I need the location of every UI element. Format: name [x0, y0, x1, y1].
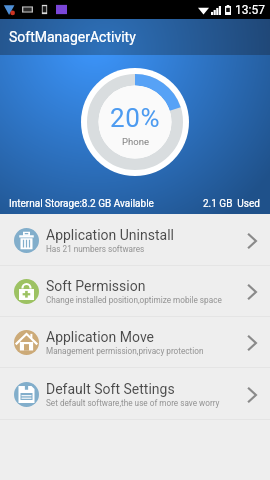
- button[interactable]: Application Uninstall: [0, 215, 270, 266]
- staticText: Management permission,privacy protection: [46, 346, 204, 356]
- staticText: Phone: [122, 136, 149, 147]
- staticText: Internal Storage:8.2 GB Available: [9, 198, 154, 210]
- staticText: 2.1 GB Used: [203, 198, 260, 210]
- other: Open Soft Permission: [245, 281, 259, 303]
- staticText: 13:57: [235, 3, 265, 17]
- other: Open Application Uninstall: [245, 230, 259, 252]
- staticText: Has 21 numbers softwares: [46, 244, 145, 254]
- button[interactable]: Default Soft Settings: [0, 369, 270, 420]
- button[interactable]: Soft Permission: [0, 266, 270, 317]
- other: Open Application Move: [245, 332, 259, 354]
- other: Open Default Soft Settings: [245, 384, 259, 406]
- staticText: Soft Permission: [46, 278, 146, 294]
- staticText: Application Uninstall: [46, 227, 174, 243]
- staticText: Application Move: [46, 329, 155, 345]
- staticText: 20%: [110, 103, 161, 133]
- staticText: Change installed position,optimize mobil…: [46, 295, 222, 305]
- button[interactable]: Application Move: [0, 317, 270, 368]
- staticText: Set default software,the use of more sav…: [46, 398, 220, 408]
- staticText: SoftManagerActivity: [9, 29, 136, 45]
- staticText: Default Soft Settings: [46, 381, 175, 397]
